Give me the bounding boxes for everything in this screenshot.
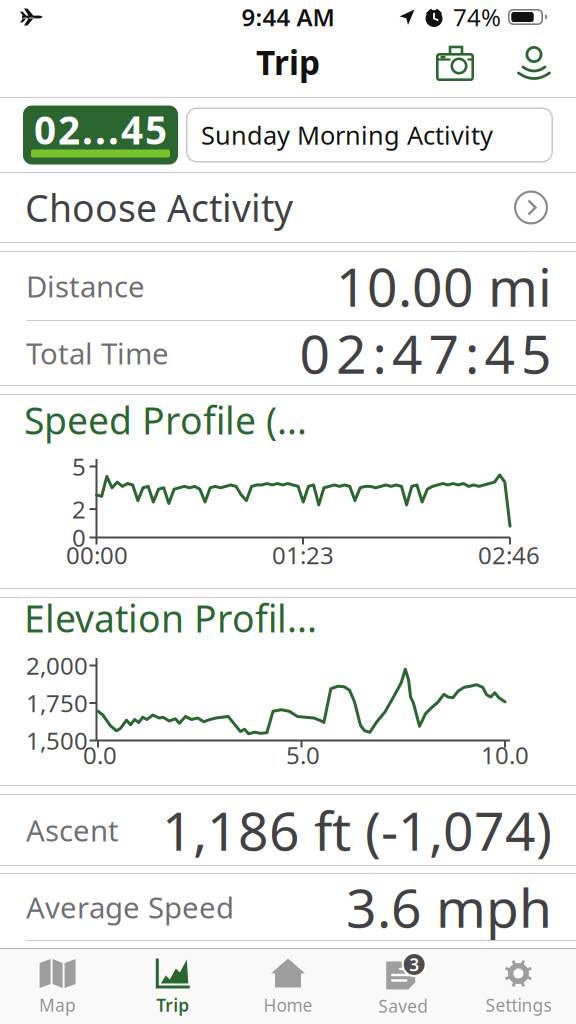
- staticText: Map: [39, 993, 76, 1016]
- button[interactable]: Activity name: [186, 107, 553, 162]
- staticText: 0.0: [83, 739, 117, 771]
- staticText: 00:00: [66, 539, 128, 571]
- button[interactable]: Choose Activity: [0, 173, 576, 242]
- staticText: Sunday Morning Activity: [201, 118, 493, 152]
- staticText: 1,500: [26, 725, 88, 756]
- button[interactable]: 3: [346, 950, 461, 1022]
- button[interactable]: Settings: [461, 950, 576, 1022]
- staticText: 74%: [453, 1, 501, 33]
- staticText: 1,186 ft (-1,074): [162, 795, 552, 865]
- staticText: 2: [72, 493, 86, 525]
- button[interactable]: Camera: [431, 39, 479, 87]
- staticText: 02...45: [34, 104, 167, 155]
- staticText: Saved: [378, 994, 428, 1017]
- staticText: Distance: [26, 266, 145, 305]
- button[interactable]: Elapsed time 02:47:45: [23, 105, 178, 164]
- staticText: Total Time: [26, 333, 169, 372]
- staticText: Elevation Profil...: [24, 593, 317, 643]
- button[interactable]: Map: [0, 950, 115, 1022]
- staticText: 01:23: [272, 539, 334, 571]
- staticText: 5: [72, 451, 86, 482]
- button[interactable]: Home: [230, 950, 346, 1022]
- staticText: Choose Activity: [25, 183, 293, 232]
- button[interactable]: Trip: [115, 950, 230, 1022]
- staticText: Trip: [156, 993, 189, 1016]
- staticText: 9:44 AM: [241, 1, 334, 33]
- staticText: 10.00 mi: [336, 251, 552, 321]
- staticText: Settings: [485, 993, 551, 1016]
- staticText: 5.0: [286, 739, 320, 771]
- staticText: Ascent: [26, 810, 119, 849]
- staticText: Trip: [256, 40, 320, 84]
- staticText: 1,750: [26, 687, 88, 719]
- staticText: 3: [409, 953, 419, 976]
- staticText: 2,000: [26, 650, 88, 681]
- staticText: Home: [263, 993, 312, 1016]
- staticText: 02:46: [478, 539, 540, 571]
- staticText: Average Speed: [26, 887, 234, 926]
- staticText: 02:47:45: [299, 318, 552, 388]
- button[interactable]: Record Track: [512, 39, 556, 87]
- staticText: 0: [72, 522, 86, 553]
- staticText: 10.0: [481, 739, 529, 771]
- staticText: Speed Profile (...: [24, 395, 307, 445]
- staticText: 3.6 mph: [346, 872, 552, 942]
